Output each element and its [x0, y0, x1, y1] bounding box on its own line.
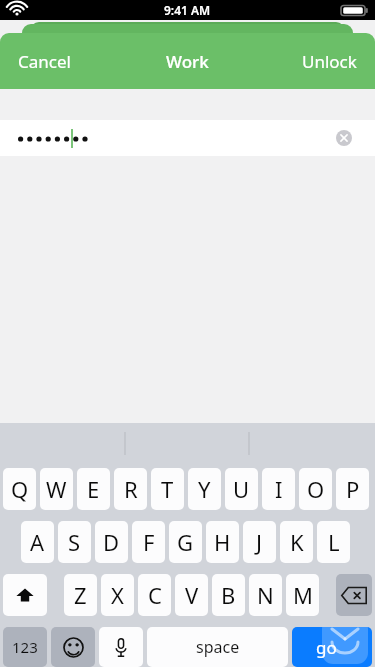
staticText: R [124, 474, 138, 504]
staticText: G [177, 527, 194, 557]
button[interactable]: T [151, 468, 184, 510]
staticText: 9:41 AM [164, 2, 211, 18]
staticText: I [275, 474, 283, 504]
staticText: Z [74, 580, 87, 610]
staticText: go [316, 636, 337, 659]
staticText: Cancel [18, 50, 71, 73]
button[interactable]: Backspace [336, 574, 372, 616]
button[interactable]: F [132, 521, 165, 563]
button[interactable]: K [280, 521, 313, 563]
button[interactable]: J [243, 521, 276, 563]
button[interactable]: O [299, 468, 332, 510]
button[interactable]: Clear text [0, 120, 375, 156]
staticText: X [111, 580, 124, 610]
staticText: S [68, 527, 81, 557]
button[interactable]: S [58, 521, 91, 563]
button[interactable]: L [317, 521, 350, 563]
staticText: Unlock [302, 50, 357, 73]
button[interactable]: B [212, 574, 245, 616]
button[interactable]: space [147, 627, 288, 667]
staticText: B [221, 580, 236, 610]
staticText: D [103, 527, 120, 557]
staticText: V [185, 580, 199, 610]
button[interactable]: R [114, 468, 147, 510]
button[interactable]: G [169, 521, 202, 563]
staticText: U [233, 474, 250, 504]
button[interactable]: P [336, 468, 369, 510]
button[interactable]: M [286, 574, 319, 616]
staticText: Work [166, 50, 209, 73]
button[interactable]: A [21, 521, 54, 563]
button[interactable]: Emoji [51, 627, 95, 667]
button[interactable]: Cancel [6, 42, 83, 81]
staticText: space [196, 636, 240, 658]
staticText: Y [198, 474, 211, 504]
staticText: F [143, 527, 155, 557]
button[interactable]: 123 [3, 627, 47, 667]
staticText: Q [11, 474, 29, 504]
staticText: W [46, 474, 67, 504]
button[interactable]: Q [3, 468, 36, 510]
staticText: T [161, 474, 174, 504]
staticText: M [293, 580, 313, 610]
button[interactable]: Shift [3, 574, 47, 616]
button[interactable]: V [175, 574, 208, 616]
staticText: H [214, 527, 231, 557]
button[interactable]: D [95, 521, 128, 563]
button[interactable]: W [40, 468, 73, 510]
button[interactable]: E [77, 468, 110, 510]
button[interactable]: U [225, 468, 258, 510]
button[interactable]: C [138, 574, 171, 616]
staticText: N [257, 580, 274, 610]
staticText: J [256, 527, 263, 557]
staticText: A [30, 527, 45, 557]
button[interactable]: Unlock [290, 42, 369, 81]
button[interactable]: N [249, 574, 282, 616]
button[interactable]: Z [64, 574, 97, 616]
staticText: 123 [12, 637, 38, 657]
button[interactable]: Y [188, 468, 221, 510]
button[interactable]: H [206, 521, 239, 563]
staticText: K [290, 527, 304, 557]
button[interactable]: I [262, 468, 295, 510]
button[interactable]: go [292, 627, 372, 667]
staticText: O [307, 474, 325, 504]
staticText: C [148, 580, 162, 610]
button[interactable]: Dictate [99, 627, 143, 667]
staticText: P [346, 474, 360, 504]
staticText: E [87, 474, 100, 504]
button[interactable]: Clear text [336, 130, 352, 146]
button[interactable]: X [101, 574, 134, 616]
staticText: L [328, 527, 340, 557]
